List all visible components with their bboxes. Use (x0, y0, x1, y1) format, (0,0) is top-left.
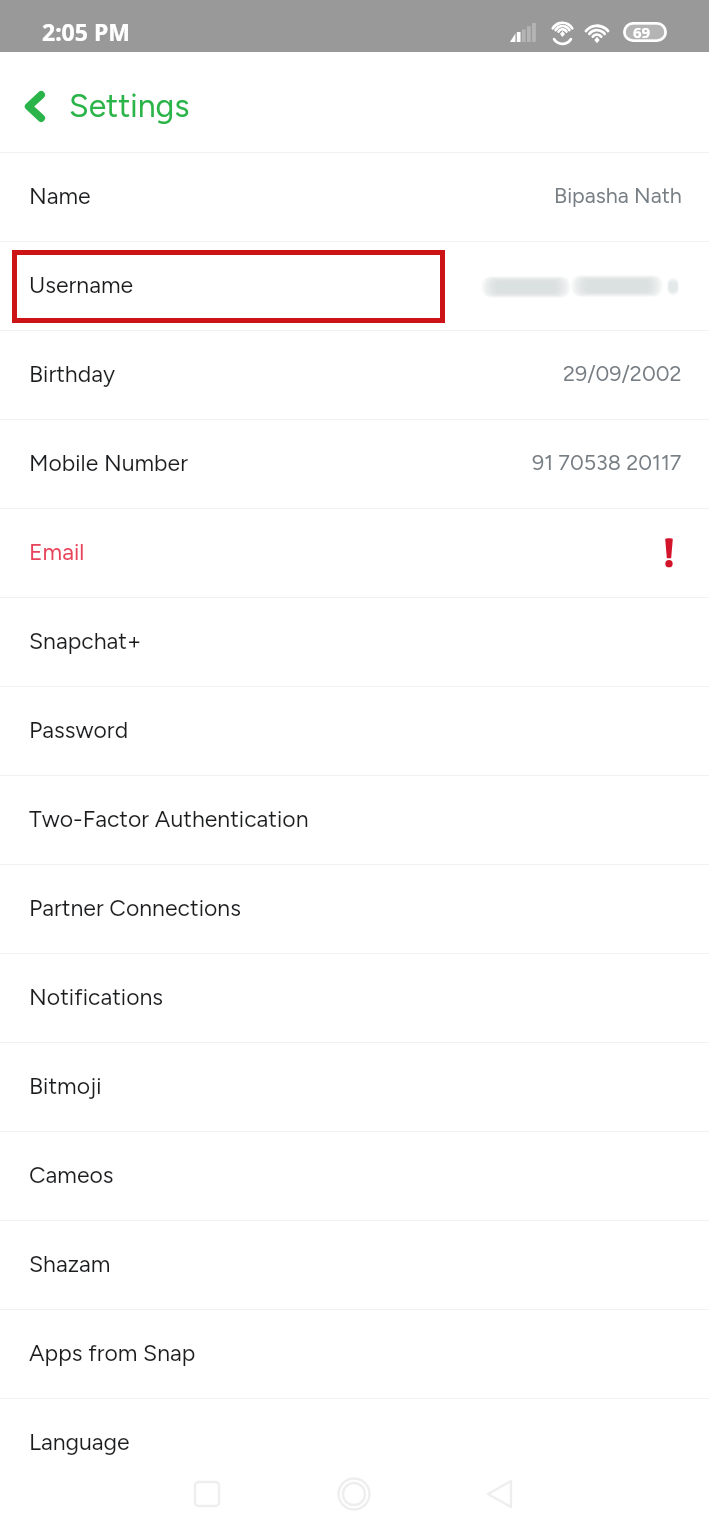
staticText: Settings (69, 87, 190, 125)
button[interactable]: Two-Factor Authentication (0, 776, 709, 865)
staticText: Bitmoji (29, 1072, 102, 1100)
staticText: Cameos (29, 1161, 114, 1189)
staticText: Birthday (29, 360, 115, 388)
button[interactable]: Birthday (0, 331, 709, 420)
button[interactable]: Cameos (0, 1132, 709, 1221)
staticText: Apps from Snap (29, 1339, 196, 1367)
button[interactable]: Email (0, 509, 709, 598)
button[interactable]: Recent apps (179, 1466, 235, 1522)
button[interactable]: Home (326, 1466, 382, 1522)
button[interactable]: Username (0, 242, 709, 331)
button[interactable]: Snapchat+ (0, 598, 709, 687)
button[interactable]: Apps from Snap (0, 1310, 709, 1399)
staticText: Name (29, 182, 91, 210)
staticText: Partner Connections (29, 894, 241, 922)
button[interactable]: Back (471, 1466, 527, 1522)
button[interactable]: Password (0, 687, 709, 776)
staticText: 29/09/2002 (563, 361, 682, 387)
staticText: Email (29, 538, 85, 566)
staticText: 91 70538 20117 (532, 450, 682, 476)
button[interactable]: Notifications (0, 954, 709, 1043)
staticText: Password (29, 716, 129, 744)
button[interactable]: Language (0, 1399, 709, 1488)
staticText: Shazam (29, 1250, 111, 1278)
button[interactable]: Partner Connections (0, 865, 709, 954)
staticText: 2:05 PM (42, 16, 130, 47)
staticText: Mobile Number (29, 449, 188, 477)
button[interactable]: Shazam (0, 1221, 709, 1310)
staticText: Username (29, 271, 134, 299)
button[interactable]: Bitmoji (0, 1043, 709, 1132)
staticText: 69 (633, 22, 651, 42)
staticText: Notifications (29, 983, 164, 1011)
staticText: Bipasha Nath (554, 183, 682, 209)
button[interactable]: Name (0, 153, 709, 242)
button[interactable]: Settings (18, 74, 196, 132)
staticText: Language (29, 1428, 130, 1456)
staticText: Two-Factor Authentication (29, 805, 309, 833)
staticText: Snapchat+ (29, 627, 142, 655)
button[interactable]: Mobile Number (0, 420, 709, 509)
